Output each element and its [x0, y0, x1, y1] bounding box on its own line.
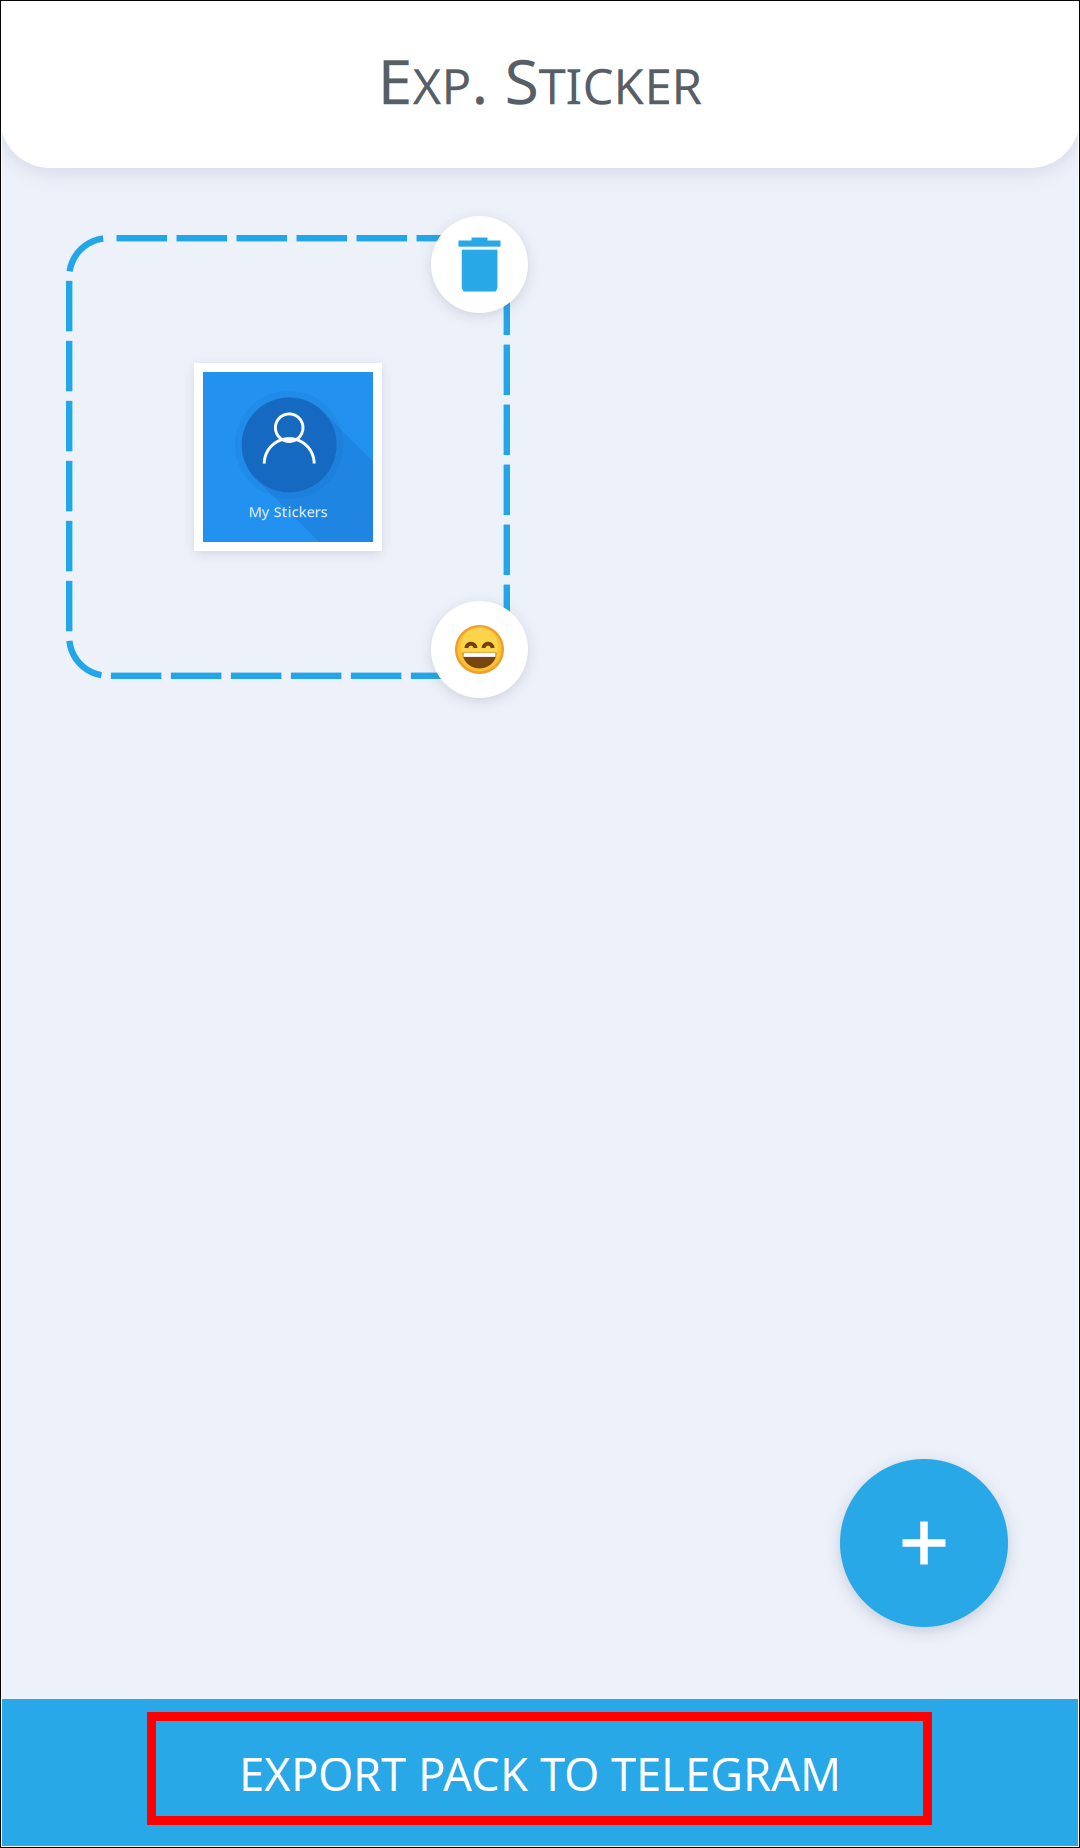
button[interactable]: Delete sticker pack [431, 216, 528, 313]
staticText: My Stickers [248, 502, 327, 521]
button[interactable]: Add sticker [840, 1459, 1008, 1627]
button[interactable]: My Stickers pack [194, 363, 382, 551]
button[interactable]: Choose emoji [431, 601, 528, 698]
button[interactable]: EXPORT PACK TO TELEGRAM [0, 1699, 1080, 1848]
staticText: EXP. STICKER [377, 38, 702, 122]
staticText: EXPORT PACK TO TELEGRAM [239, 1743, 841, 1804]
